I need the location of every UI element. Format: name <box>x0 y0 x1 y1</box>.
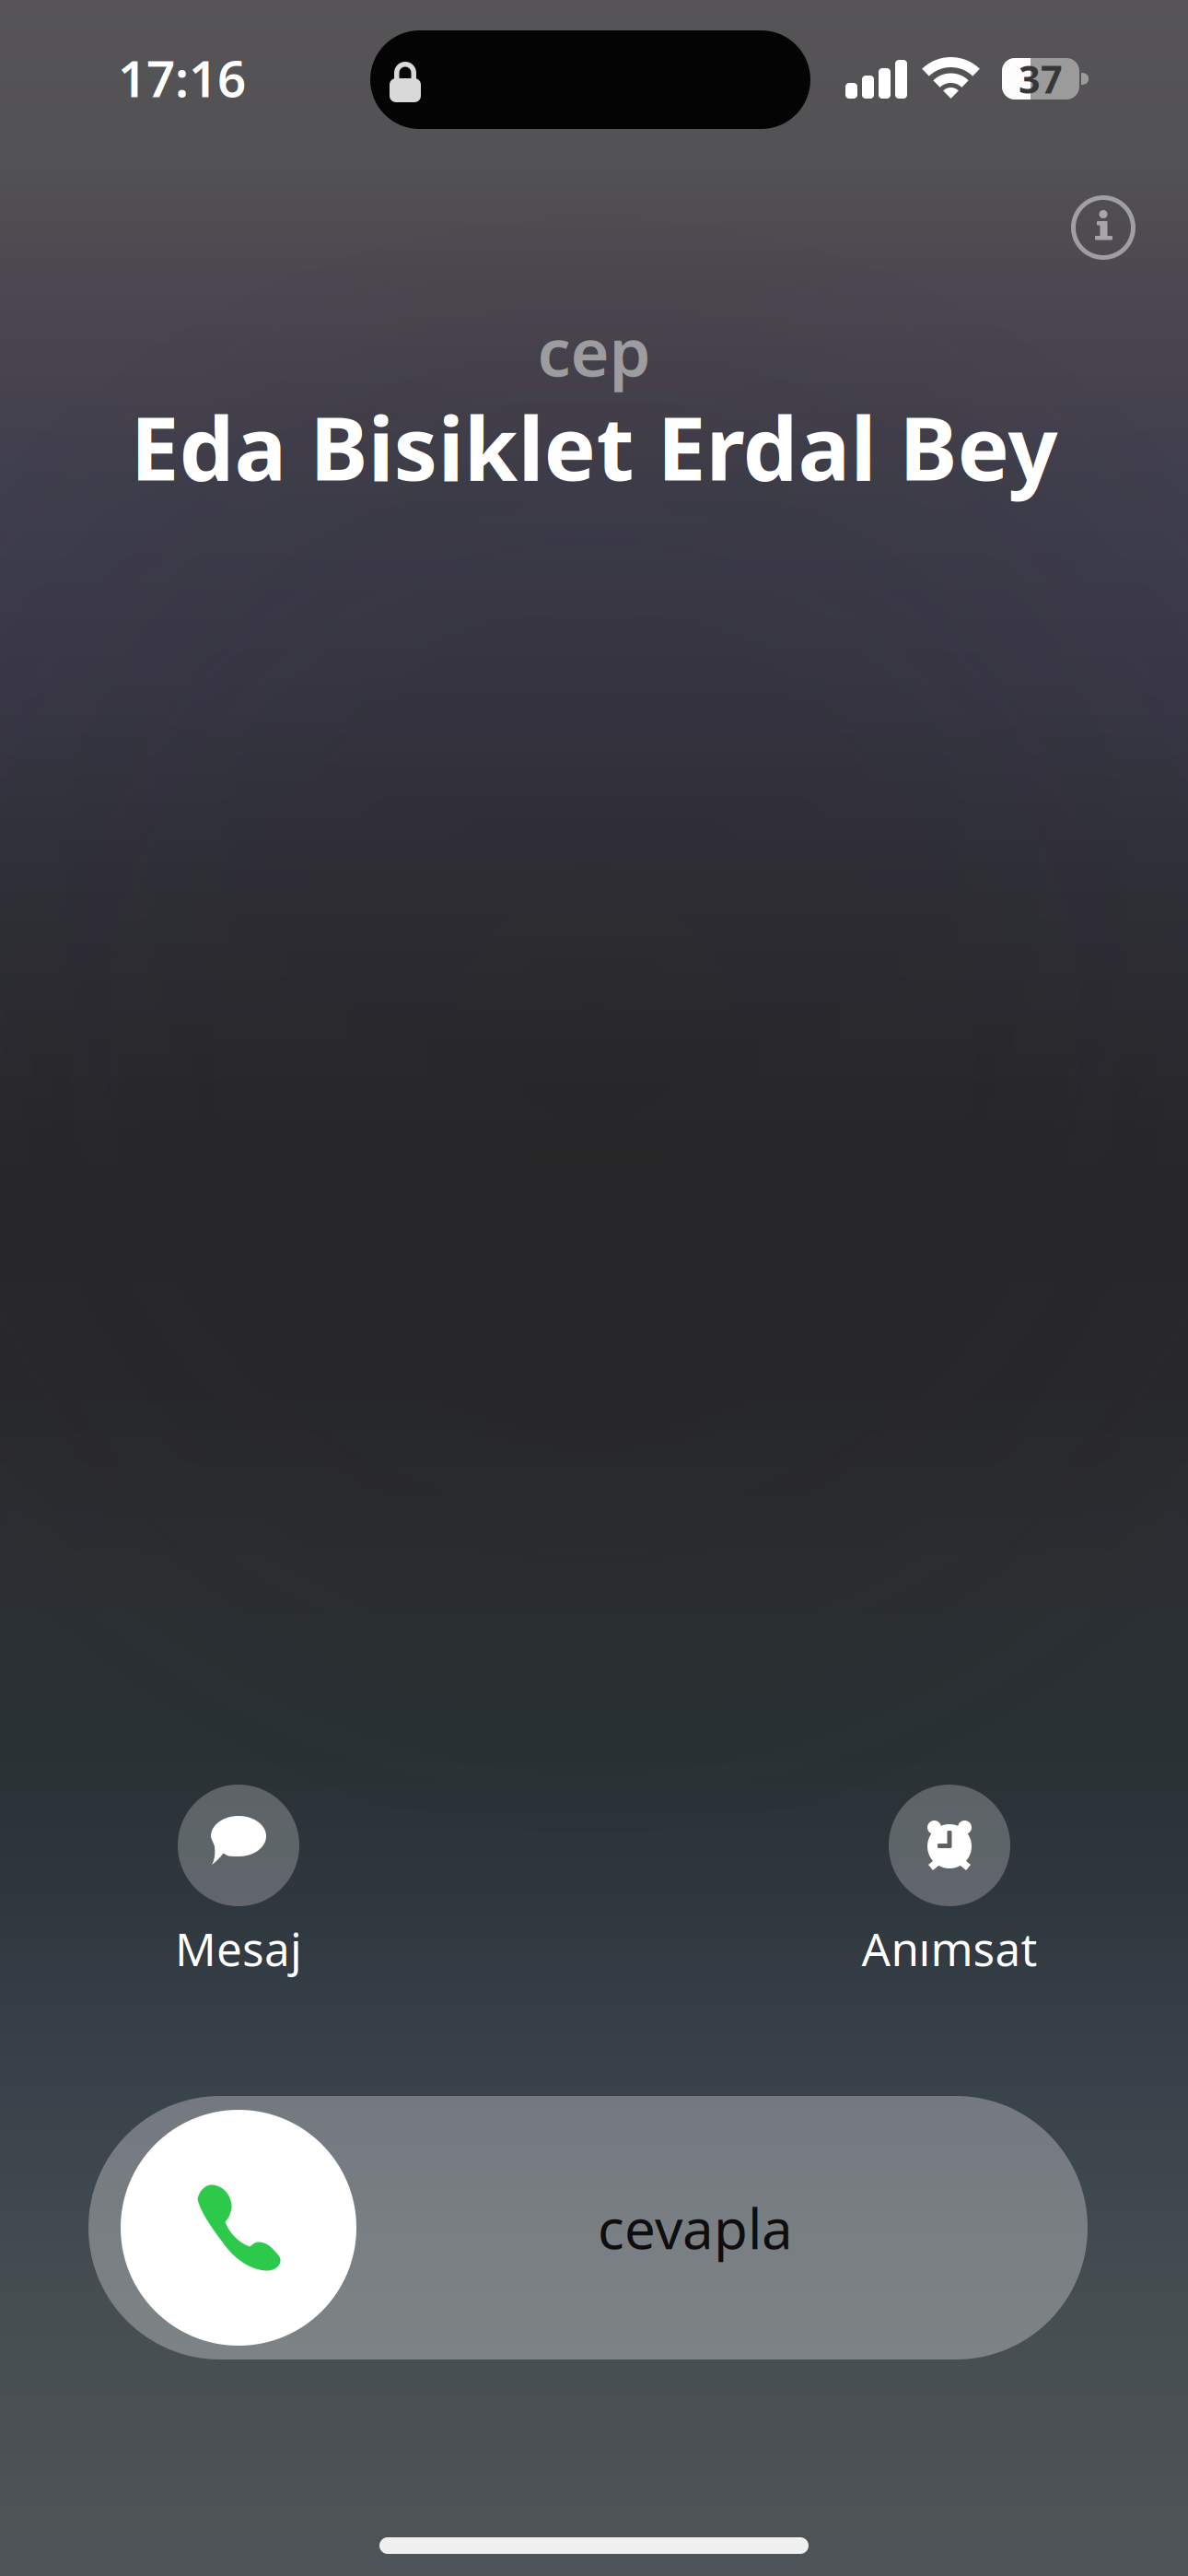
staticText: cep <box>537 307 651 395</box>
staticText: Mesaj <box>175 1918 302 1979</box>
button[interactable]: Anımsat <box>830 1785 1069 1979</box>
staticText: 17:16 <box>118 44 246 111</box>
staticText: 37 <box>1019 54 1063 104</box>
staticText: cevapla <box>598 2191 793 2265</box>
staticText: Eda Bisiklet Erdal Bey <box>130 389 1058 505</box>
button[interactable]: cevapla <box>88 2096 1088 2359</box>
button[interactable]: Mesaj <box>119 1785 358 1979</box>
staticText: Anımsat <box>862 1918 1037 1979</box>
button[interactable]: Bilgi <box>1061 185 1146 270</box>
